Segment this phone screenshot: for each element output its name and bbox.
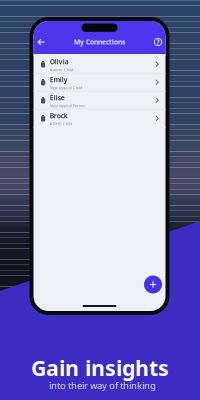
staticText: Neurotypical Child (50, 85, 82, 90)
button[interactable]: Back (33, 35, 49, 49)
staticText: ? (156, 37, 159, 46)
button[interactable]: Elise (33, 92, 165, 110)
button[interactable]: Help (150, 34, 165, 49)
staticText: Elise (50, 93, 65, 102)
button[interactable]: Brock (33, 110, 165, 128)
staticText: Autistic Child (50, 67, 73, 72)
staticText: Emily (50, 75, 68, 84)
staticText: Gain insights (31, 353, 169, 382)
button[interactable]: Add connection (144, 275, 162, 293)
staticText: Brock (50, 111, 68, 120)
staticText: into their way of thinking (49, 379, 156, 392)
button[interactable]: Olivia (33, 56, 165, 74)
staticText: My Connections (74, 38, 125, 46)
staticText: Olivia (50, 57, 69, 66)
button[interactable]: Emily (33, 74, 165, 92)
staticText: Neurotypical Partner (50, 103, 86, 108)
staticText: ADHD Child (50, 121, 72, 126)
